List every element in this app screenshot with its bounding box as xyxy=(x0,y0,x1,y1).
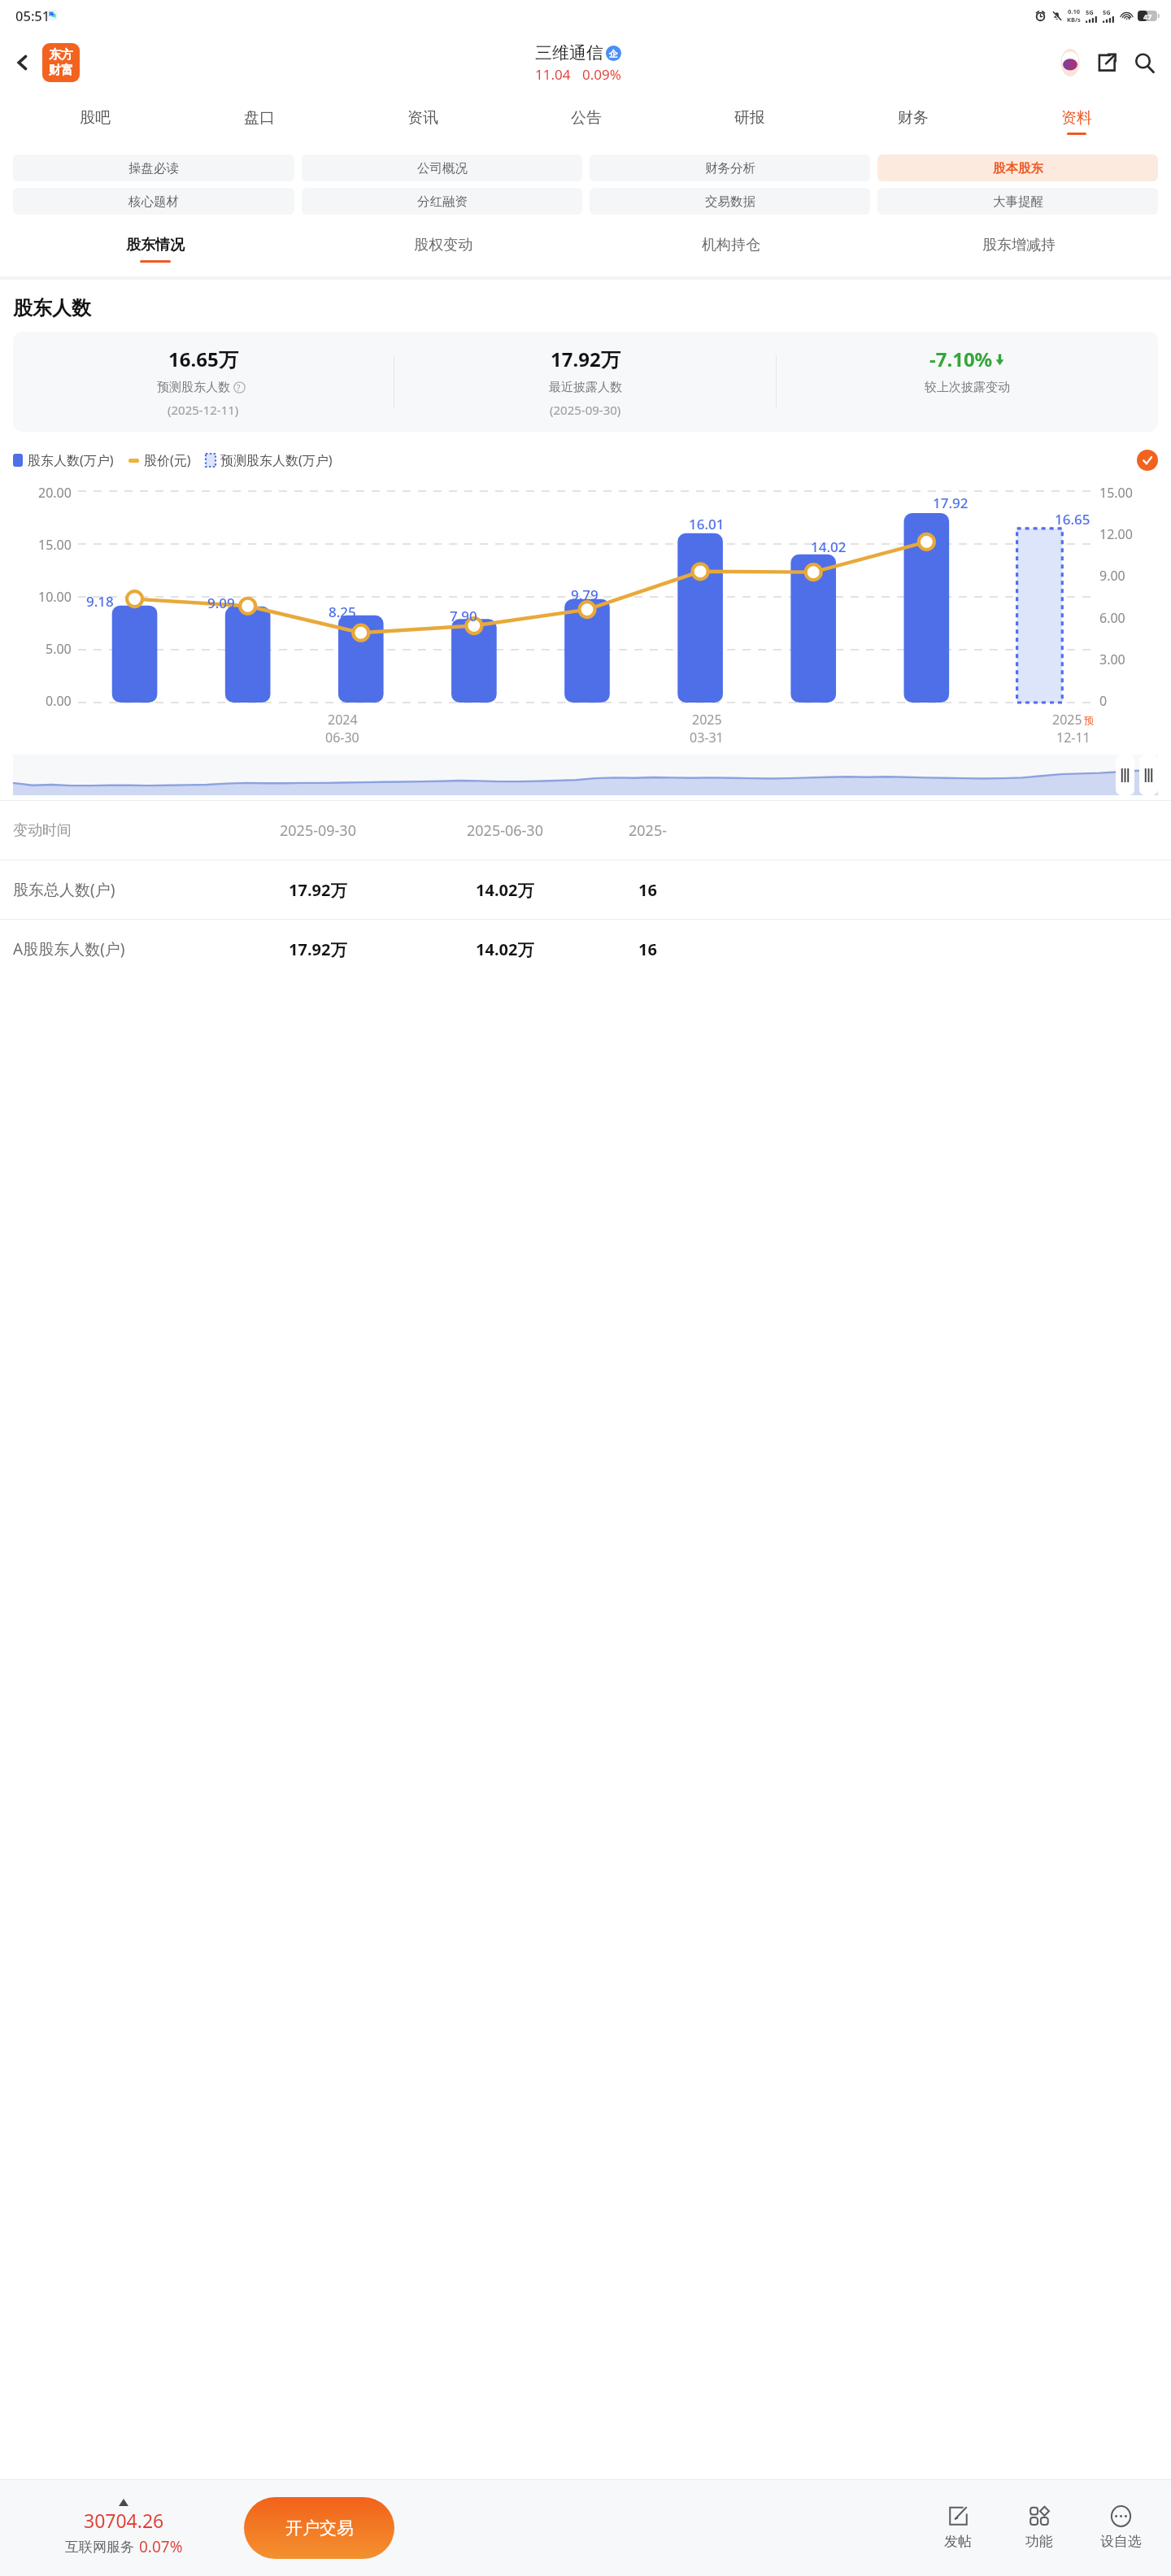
staticText: 2025- xyxy=(629,820,667,841)
staticText: 发帖 xyxy=(944,2533,972,2550)
staticText: 股东情况 xyxy=(126,236,185,255)
staticText: (2025-12-11) xyxy=(168,402,239,418)
button[interactable]: 资讯 xyxy=(341,95,504,148)
staticText: 06-30 xyxy=(325,729,359,746)
staticText: 16.65 xyxy=(1055,510,1090,529)
staticText: 操盘必读 xyxy=(128,160,179,176)
staticText: 研报 xyxy=(734,108,765,128)
staticText: 股东人数 xyxy=(13,296,91,320)
button[interactable]: Search xyxy=(1125,44,1163,81)
staticText: 较上次披露变动 xyxy=(925,380,1010,395)
staticText: 大事提醒 xyxy=(993,194,1043,210)
button[interactable]: 股东增减持 xyxy=(875,221,1163,276)
button[interactable]: 开户交易 xyxy=(244,2497,394,2559)
staticText: 分红融资 xyxy=(417,194,468,210)
staticText: 股东总人数(户) xyxy=(13,879,224,900)
staticText: 2025 xyxy=(1052,711,1082,729)
staticText: 05:51 xyxy=(15,7,50,24)
staticText: KB/s xyxy=(1067,15,1081,24)
staticText: 0.00 xyxy=(46,692,72,710)
button[interactable]: 股东情况 xyxy=(11,221,299,276)
staticText: 2025-06-30 xyxy=(467,820,543,841)
button[interactable]: Range handle xyxy=(1116,755,1134,795)
button[interactable]: 核心题材 xyxy=(13,188,294,215)
button[interactable]: 财务 xyxy=(831,95,995,148)
button[interactable]: 股东人数(万户) xyxy=(13,451,114,469)
staticText: 5G xyxy=(1103,8,1111,16)
staticText: 7.90 xyxy=(450,607,477,625)
staticText: 设自选 xyxy=(1100,2533,1142,2550)
staticText: 预测股东人数(万户) xyxy=(220,451,333,469)
button[interactable]: 发帖 xyxy=(917,2479,999,2576)
staticText: 机构持仓 xyxy=(702,236,760,255)
staticText: 股本股东 xyxy=(993,160,1043,176)
staticText: 功能 xyxy=(1025,2533,1053,2550)
button[interactable]: Back xyxy=(5,45,41,80)
button[interactable]: Range handle xyxy=(13,755,1158,795)
button[interactable]: 变动时间 xyxy=(13,801,1171,859)
staticText: 财务分析 xyxy=(705,160,755,176)
button[interactable]: 16.65万 xyxy=(13,346,1158,418)
button[interactable]: 资料 xyxy=(995,95,1158,148)
staticText: 最近披露人数 xyxy=(549,380,622,395)
button[interactable]: 机构持仓 xyxy=(587,221,875,276)
button[interactable]: Share xyxy=(1088,44,1125,81)
button[interactable]: 公司概况 xyxy=(302,154,582,181)
staticText: 预测股东人数 xyxy=(157,380,230,395)
button[interactable]: 交易数据 xyxy=(590,188,870,215)
staticText: 12.00 xyxy=(1099,525,1133,543)
button[interactable]: 30704.26 xyxy=(10,2499,237,2557)
staticText: 股权变动 xyxy=(414,236,472,255)
staticText: 2025-09-30 xyxy=(280,820,356,841)
staticText: 股吧 xyxy=(80,108,111,128)
staticText: 16 xyxy=(638,879,657,901)
button[interactable]: 股吧 xyxy=(13,95,177,148)
button[interactable]: 大事提醒 xyxy=(877,188,1158,215)
staticText: 6.00 xyxy=(1099,609,1125,627)
staticText: 变动时间 xyxy=(13,821,224,840)
staticText: 公司概况 xyxy=(417,160,468,176)
button[interactable]: 操盘必读 xyxy=(13,154,294,181)
staticText: 9.00 xyxy=(1099,567,1125,585)
staticText: 2025 xyxy=(692,711,722,729)
staticText: 公告 xyxy=(571,108,602,128)
button[interactable]: 公告 xyxy=(504,95,668,148)
button[interactable]: 股东总人数(户) xyxy=(13,860,1171,919)
button[interactable]: 股价(元) xyxy=(128,451,191,469)
button[interactable]: Range handle xyxy=(1139,755,1158,795)
staticText: 0.07% xyxy=(139,2536,183,2557)
staticText: 47 xyxy=(1143,11,1152,21)
staticText: 股价(元) xyxy=(144,451,191,469)
button[interactable]: 股权变动 xyxy=(299,221,587,276)
staticText: 30704.26 xyxy=(84,2508,164,2533)
button[interactable]: 盘口 xyxy=(177,95,341,148)
button[interactable]: 东方财富 xyxy=(42,43,80,82)
button[interactable]: 功能 xyxy=(999,2479,1080,2576)
button[interactable]: 股本股东 xyxy=(877,154,1158,181)
staticText: 资讯 xyxy=(407,108,438,128)
staticText: 16.65万 xyxy=(168,346,238,372)
button[interactable]: Confirm xyxy=(1137,450,1158,471)
button[interactable]: 分红融资 xyxy=(302,188,582,215)
staticText: 17.92万 xyxy=(289,938,347,960)
staticText: 10.00 xyxy=(38,588,72,606)
staticText: 东方 xyxy=(49,47,73,63)
staticText: 股东增减持 xyxy=(982,236,1056,255)
button[interactable]: A股股东人数(户) xyxy=(13,920,1171,978)
button[interactable]: 研报 xyxy=(668,95,831,148)
staticText: 核心题材 xyxy=(128,194,179,210)
staticText: 0.10 xyxy=(1068,7,1080,15)
button[interactable]: AI assistant xyxy=(1052,45,1088,80)
staticText: 预 xyxy=(1084,714,1094,726)
staticText: 14.02万 xyxy=(476,938,534,960)
staticText: 15.00 xyxy=(38,536,72,554)
button[interactable]: 设自选 xyxy=(1080,2479,1161,2576)
staticText: 9.18 xyxy=(86,592,114,611)
staticText: 互联网服务 xyxy=(65,2539,134,2556)
staticText: ? xyxy=(237,382,241,394)
button[interactable]: 预测股东人数(万户) xyxy=(206,451,333,469)
button[interactable]: 财务分析 xyxy=(590,154,870,181)
staticText: 交易数据 xyxy=(705,194,755,210)
staticText: 股东人数(万户) xyxy=(28,451,114,469)
staticText: 14.02万 xyxy=(476,879,534,901)
